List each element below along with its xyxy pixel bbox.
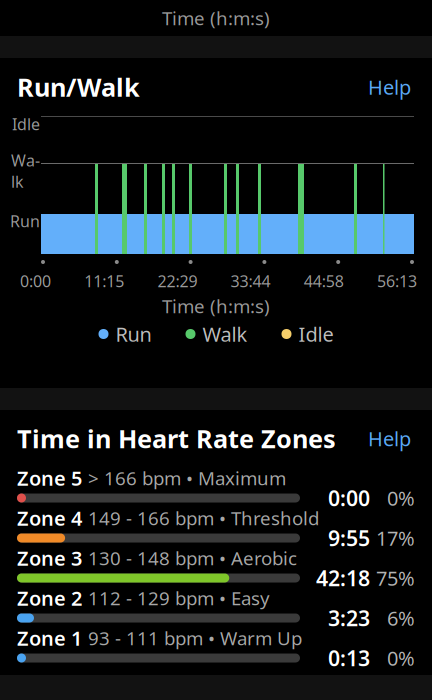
staticText: Run	[115, 321, 151, 347]
staticText: 22:29	[157, 270, 197, 292]
staticText: 0:00	[328, 484, 370, 512]
staticText: Zone 3	[17, 545, 82, 571]
staticText: 33:44	[231, 270, 271, 292]
staticText: 56:13	[377, 270, 417, 292]
staticText: Help	[368, 425, 411, 452]
button[interactable]: Zone 5	[0, 467, 432, 507]
staticText: Idle	[298, 321, 333, 347]
staticText: 149 - 166 bpm • Threshold	[88, 506, 319, 530]
staticText: Zone 5	[17, 465, 82, 491]
staticText: 93 - 111 bpm • Warm Up	[88, 626, 302, 650]
staticText: Time (h:m:s)	[162, 6, 270, 30]
staticText: Zone 4	[17, 505, 82, 531]
staticText: 17%	[376, 525, 415, 551]
staticText: 0%	[387, 485, 415, 511]
button[interactable]: Help	[364, 68, 415, 106]
staticText: 11:15	[84, 270, 124, 292]
staticText: Idle	[12, 113, 40, 135]
staticText: 112 - 129 bpm • Easy	[88, 586, 270, 610]
staticText: Zone 2	[17, 585, 82, 611]
staticText: Time in Heart Rate Zones	[17, 422, 336, 455]
staticText: 42:18	[316, 564, 370, 592]
button[interactable]: Zone 1	[0, 627, 432, 667]
staticText: > 166 bpm • Maximum	[88, 466, 286, 490]
staticText: Walk	[202, 321, 247, 347]
staticText: 9:55	[328, 524, 370, 552]
staticText: 3:23	[328, 604, 370, 632]
staticText: Run	[10, 210, 40, 232]
staticText: 44:58	[304, 270, 344, 292]
button[interactable]: Zone 2	[0, 587, 432, 627]
staticText: 0%	[387, 645, 415, 671]
button[interactable]: Help	[364, 419, 415, 458]
button[interactable]: Zone 4	[0, 507, 432, 547]
button[interactable]: Zone 3	[0, 547, 432, 587]
staticText: 6%	[387, 605, 415, 631]
staticText: 0:00	[20, 270, 51, 292]
staticText: Walk	[11, 150, 40, 192]
staticText: 75%	[376, 565, 415, 591]
staticText: 130 - 148 bpm • Aerobic	[88, 546, 297, 570]
staticText: Help	[368, 74, 411, 100]
staticText: Run/Walk	[17, 70, 140, 104]
staticText: 0:13	[328, 644, 370, 672]
staticText: Zone 1	[17, 625, 82, 651]
staticText: Time (h:m:s)	[162, 294, 270, 318]
